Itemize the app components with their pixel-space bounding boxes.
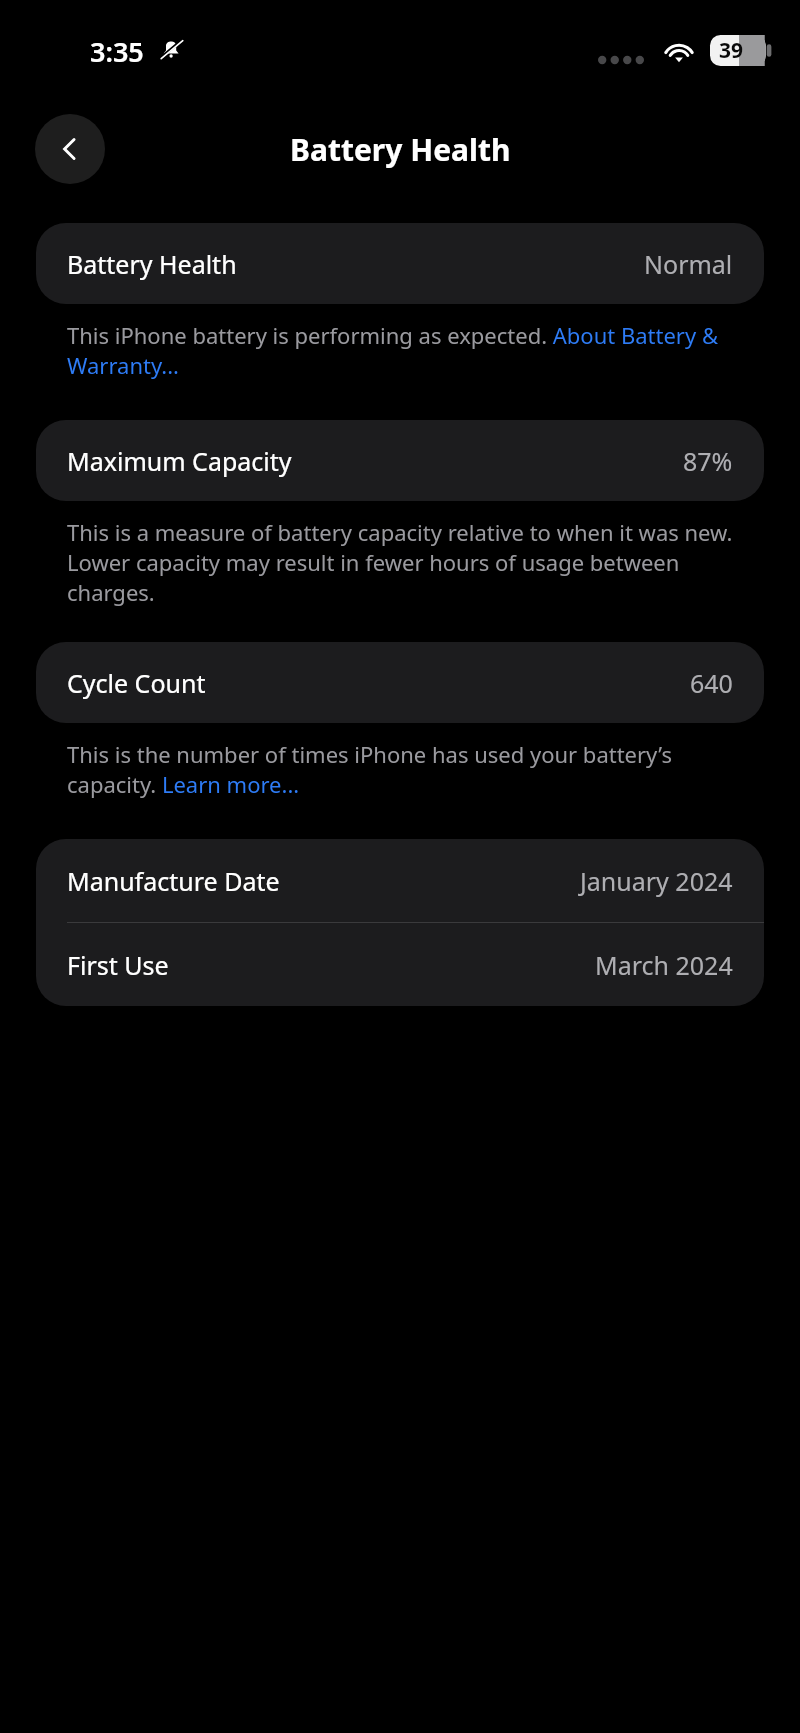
button[interactable]: Manufacture Date — [36, 839, 764, 922]
staticText: Battery Health — [290, 129, 511, 170]
staticText: March 2024 — [595, 948, 733, 982]
staticText: This is the number of times iPhone has u… — [67, 739, 744, 799]
staticText: This iPhone battery is performing as exp… — [67, 320, 744, 380]
button[interactable]: First Use — [36, 923, 764, 1006]
button[interactable]: Back — [35, 114, 105, 184]
staticText: 87% — [683, 444, 733, 478]
staticText: Manufacture Date — [67, 864, 580, 898]
button[interactable]: Maximum Capacity — [36, 420, 764, 501]
button[interactable]: Cycle Count — [36, 642, 764, 723]
staticText: Cycle Count — [67, 666, 690, 700]
staticText: Battery Health — [67, 247, 644, 281]
button[interactable]: Battery Health — [36, 223, 764, 304]
staticText: 640 — [690, 666, 733, 700]
staticText: January 2024 — [580, 864, 733, 898]
staticText: Normal — [644, 247, 733, 281]
staticText: Maximum Capacity — [67, 444, 683, 478]
staticText: 3:35 — [90, 33, 144, 70]
staticText: This is a measure of battery capacity re… — [67, 517, 744, 607]
staticText: 39 — [719, 36, 744, 65]
staticText: First Use — [67, 948, 595, 982]
